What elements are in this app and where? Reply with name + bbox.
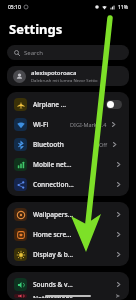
button[interactable]: Search bbox=[7, 45, 129, 60]
button[interactable]: Notifications bbox=[7, 294, 129, 298]
staticText: Settings bbox=[9, 20, 63, 38]
staticText: DIGI-Mark-2.4 bbox=[70, 121, 107, 128]
button[interactable]: Wi-Fi bbox=[7, 114, 129, 134]
staticText: Connection & sharing bbox=[33, 180, 74, 189]
button[interactable]: Wallpapers & style bbox=[7, 204, 129, 224]
button[interactable]: Display & brightness bbox=[7, 244, 129, 264]
staticText: Airplane mode bbox=[33, 100, 69, 109]
button[interactable]: Connection & sharing bbox=[7, 174, 129, 194]
staticText: Mobile network bbox=[33, 160, 74, 169]
staticText: Display & brightness bbox=[33, 250, 74, 259]
button[interactable]: Home screen & Lock screen bbox=[7, 224, 129, 244]
staticText: Home screen & Lock screen bbox=[33, 230, 74, 239]
button[interactable]: Bluetooth bbox=[7, 134, 129, 154]
button[interactable]: Airplane mode bbox=[7, 94, 129, 114]
staticText: alexispotoroaca bbox=[31, 69, 77, 77]
staticText: Notifications bbox=[33, 294, 73, 298]
button[interactable]: Sounds & vibration bbox=[7, 274, 129, 294]
staticText: Wallpapers & style bbox=[33, 210, 74, 219]
staticText: Wi-Fi bbox=[33, 120, 49, 129]
staticText: Off bbox=[99, 141, 108, 148]
staticText: 05:10 bbox=[8, 4, 21, 11]
staticText: Sounds & vibration bbox=[33, 280, 74, 289]
staticText: 11% bbox=[118, 4, 128, 11]
button[interactable]: alexispotoroaca bbox=[7, 66, 129, 86]
staticText: Dalebrush mit lumea Nevor Settio bbox=[31, 78, 98, 84]
staticText: Bluetooth bbox=[33, 140, 64, 149]
staticText: Search bbox=[24, 49, 43, 57]
button[interactable]: Mobile network bbox=[7, 154, 129, 174]
